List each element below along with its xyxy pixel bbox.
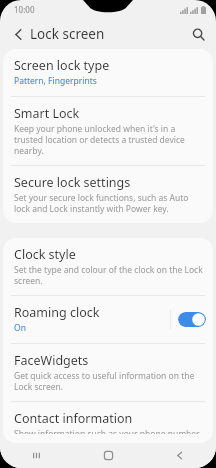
staticText: On xyxy=(14,322,26,334)
staticText: Pattern, Fingerprints xyxy=(14,75,97,87)
staticText: Set your secure lock functions, such as … xyxy=(14,192,206,214)
staticText: Smart Lock xyxy=(14,105,80,122)
staticText: Set the type and colour of the clock on … xyxy=(14,264,206,286)
button[interactable]: Secure lock settings xyxy=(3,166,213,223)
staticText: Secure lock settings xyxy=(14,174,131,191)
staticText: Get quick access to useful information o… xyxy=(14,370,206,392)
button[interactable]: Back xyxy=(7,23,29,45)
button[interactable]: Contact information xyxy=(3,402,213,443)
staticText: Show information such as your phone numb… xyxy=(14,428,206,434)
staticText: Lock screen xyxy=(30,25,105,43)
staticText: Clock style xyxy=(14,246,76,263)
button[interactable]: FaceWidgets xyxy=(3,344,213,401)
staticText: FaceWidgets xyxy=(14,352,89,369)
button[interactable]: Smart Lock xyxy=(3,97,213,165)
button[interactable]: Roaming clock xyxy=(3,296,213,343)
button[interactable]: Toggle Roaming clock xyxy=(178,312,206,327)
staticText: Keep your phone unlocked when it's in a … xyxy=(14,123,206,156)
button[interactable]: Recents xyxy=(0,443,72,468)
staticText: Roaming clock xyxy=(14,304,100,321)
button[interactable]: Home xyxy=(72,443,144,468)
button[interactable]: Back xyxy=(144,443,216,468)
staticText: 10:00 xyxy=(14,4,35,15)
staticText: Contact information xyxy=(14,410,133,427)
button[interactable]: Clock style xyxy=(3,238,213,295)
staticText: Screen lock type xyxy=(14,57,110,74)
button[interactable]: Screen lock type xyxy=(3,49,213,96)
button[interactable]: Search xyxy=(187,23,209,45)
